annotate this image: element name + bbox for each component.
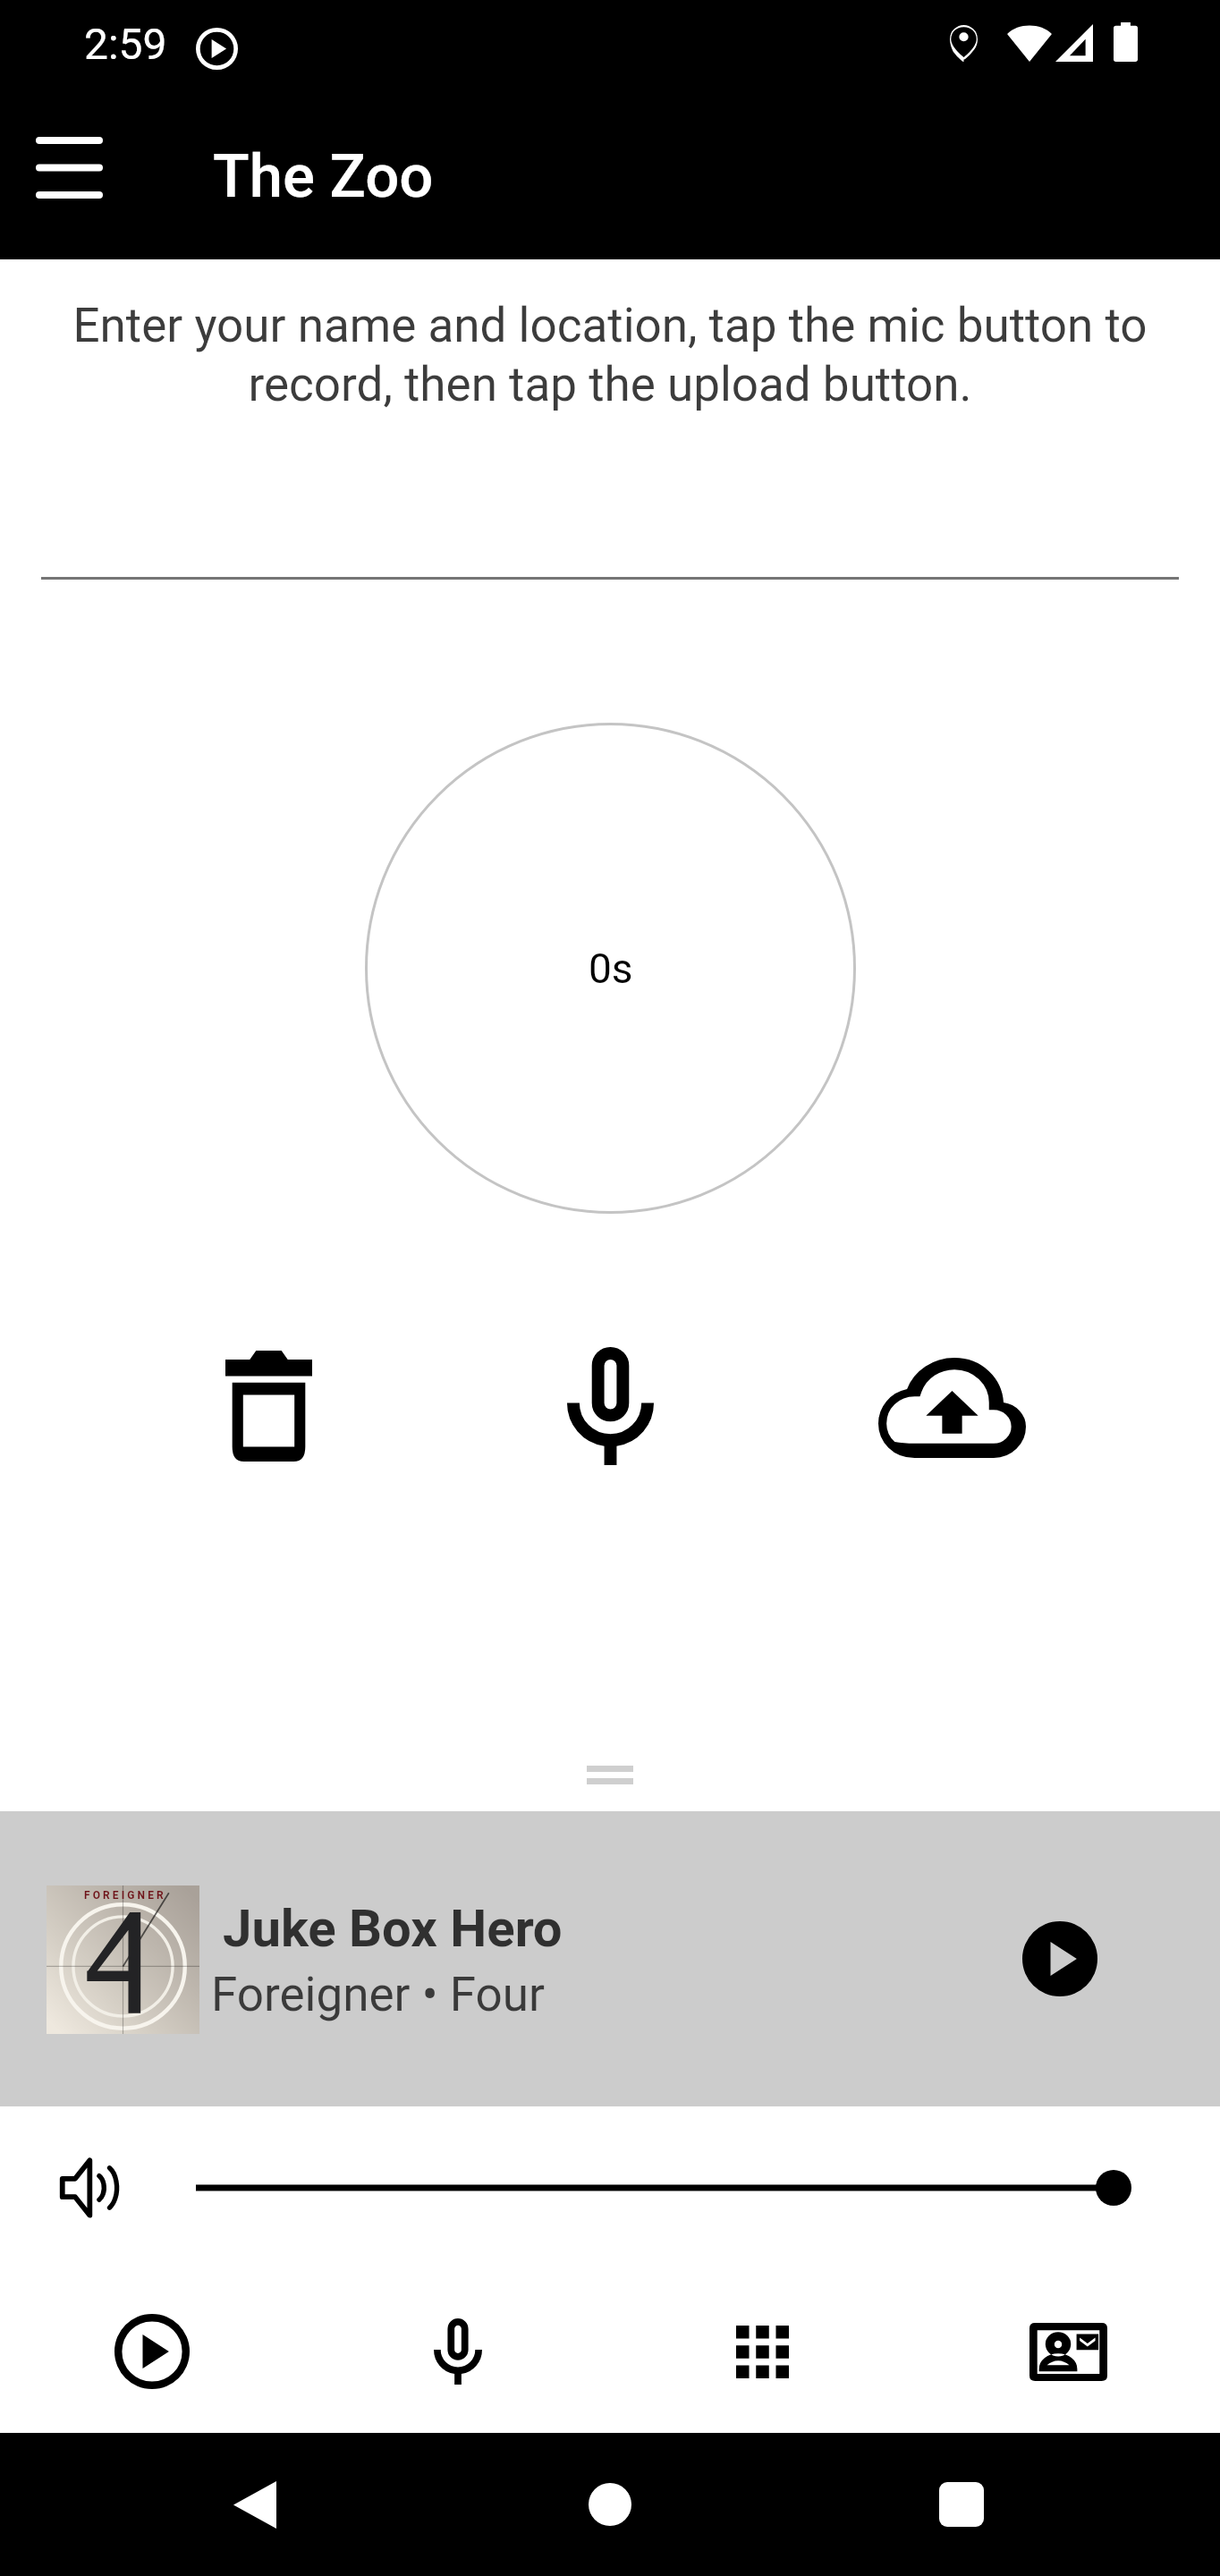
button[interactable]: Record — [356, 2276, 560, 2427]
button[interactable]: Back — [183, 2451, 326, 2558]
staticText: 0s — [589, 945, 633, 993]
button[interactable]: Recording timer — [365, 723, 856, 1214]
button[interactable]: Home — [538, 2451, 682, 2558]
button[interactable]: Apps — [660, 2276, 864, 2427]
button[interactable]: Open navigation menu — [26, 119, 113, 216]
staticText: Juke Box Hero — [223, 1898, 563, 1959]
button[interactable]: Volume — [36, 2138, 143, 2238]
staticText: 2:59 — [84, 19, 167, 69]
button[interactable]: Upload recording — [863, 1327, 1041, 1488]
staticText: FOREIGNER — [84, 1889, 166, 1902]
button[interactable]: Name and location — [41, 465, 1179, 580]
button[interactable]: Recent apps — [890, 2451, 1033, 2558]
button[interactable]: Record — [522, 1329, 698, 1483]
button[interactable]: Contacts — [966, 2276, 1170, 2427]
button[interactable]: Play — [1002, 1901, 1118, 2017]
staticText: Enter your name and location, tap the mi… — [36, 298, 1184, 412]
button[interactable]: Volume level — [196, 2154, 1132, 2222]
button[interactable]: Play — [50, 2276, 254, 2427]
staticText: Foreigner • Four — [211, 1967, 545, 2022]
button[interactable]: Delete recording — [181, 1326, 356, 1487]
button[interactable] — [0, 1811, 1220, 2106]
staticText: The Zoo — [213, 141, 434, 212]
